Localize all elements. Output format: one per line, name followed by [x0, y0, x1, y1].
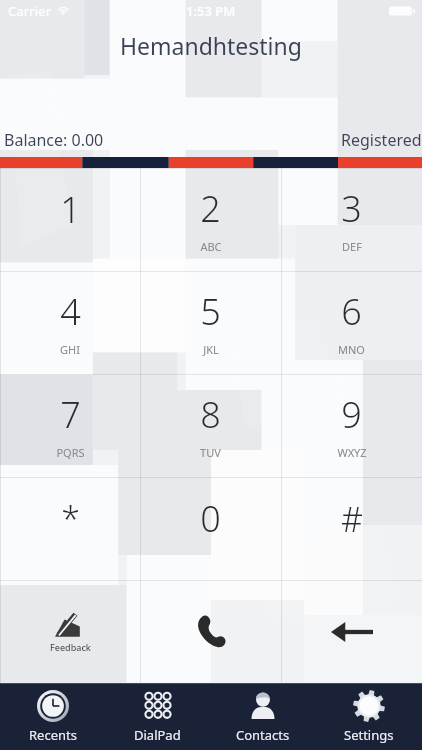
button[interactable]: 5	[140, 271, 281, 374]
staticText: GHI	[60, 342, 80, 357]
staticText: Recents	[29, 726, 77, 744]
staticText: Feedback	[50, 641, 91, 653]
staticText: 4	[60, 287, 81, 336]
button[interactable]: DialPad	[105, 683, 210, 750]
button[interactable]: 1	[0, 168, 140, 271]
button[interactable]: #	[281, 477, 422, 580]
button[interactable]: Feedback	[0, 580, 140, 683]
staticText: 1	[60, 185, 81, 234]
staticText: MNO	[338, 342, 365, 357]
staticText: WXYZ	[337, 445, 367, 460]
button[interactable]: 4	[0, 271, 140, 374]
staticText: Contacts	[236, 726, 290, 744]
staticText: 0	[200, 494, 221, 543]
button[interactable]: 9	[281, 374, 422, 477]
button[interactable]: 7	[0, 374, 140, 477]
staticText: ABC	[200, 239, 222, 254]
button[interactable]: 2	[140, 168, 281, 271]
staticText: DialPad	[134, 726, 181, 744]
staticText: DEF	[342, 239, 362, 254]
staticText: 1:53 PM	[186, 2, 236, 20]
button[interactable]: Settings	[316, 683, 422, 750]
staticText: 7	[60, 390, 81, 439]
staticText: Settings	[344, 726, 394, 744]
staticText: Carrier	[8, 2, 52, 20]
button[interactable]: Backspace	[281, 580, 422, 683]
button[interactable]: 0	[140, 477, 281, 580]
button[interactable]: 3	[281, 168, 422, 271]
staticText: 9	[341, 390, 362, 439]
staticText: Balance: 0.00	[4, 129, 104, 151]
staticText: 8	[200, 390, 221, 439]
staticText: #	[341, 496, 363, 542]
button[interactable]: Call	[140, 580, 281, 683]
staticText: 2	[200, 184, 221, 233]
staticText: 5	[200, 287, 221, 336]
button[interactable]: 6	[281, 271, 422, 374]
staticText: Hemandhtesting	[120, 30, 302, 61]
staticText: Registered	[341, 129, 422, 151]
staticText: TUV	[200, 445, 221, 460]
staticText: *	[61, 496, 80, 542]
button[interactable]: Recents	[0, 683, 105, 750]
button[interactable]: Contacts	[210, 683, 316, 750]
button[interactable]: *	[0, 477, 140, 580]
staticText: 6	[341, 287, 362, 336]
button[interactable]: 8	[140, 374, 281, 477]
staticText: JKL	[203, 342, 219, 357]
staticText: PQRS	[56, 445, 85, 460]
staticText: 3	[341, 184, 362, 233]
